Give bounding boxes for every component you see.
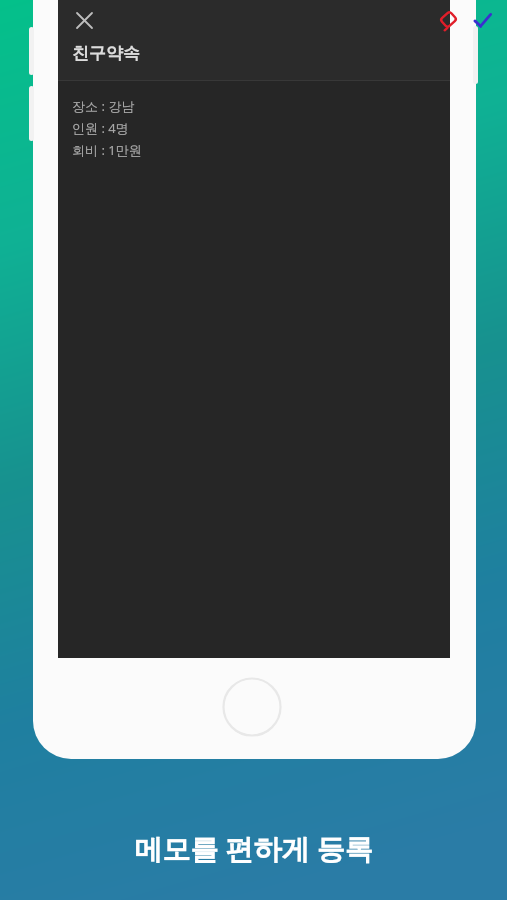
staticText: 친구약속 <box>72 43 140 64</box>
button[interactable]: Save <box>462 0 502 40</box>
staticText: 회비 : 1만원 <box>72 141 142 159</box>
staticText: 메모를 편하게 등록 <box>0 829 507 867</box>
button[interactable]: Close <box>64 0 104 40</box>
button[interactable]: Home <box>222 677 282 737</box>
staticText: 인원 : 4명 <box>72 119 129 137</box>
staticText: 장소 : 강남 <box>72 97 135 115</box>
button[interactable]: Erase <box>429 0 467 38</box>
